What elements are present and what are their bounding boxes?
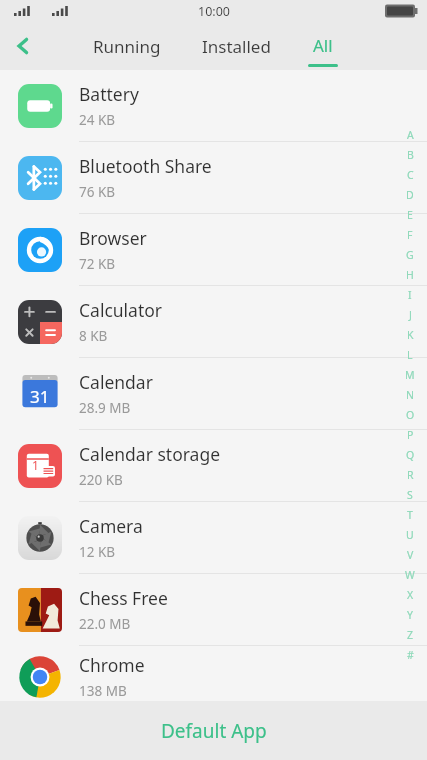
staticText: 76 KB [79, 183, 116, 201]
staticText: Chess Free [79, 586, 168, 610]
staticText: Q [406, 448, 415, 462]
staticText: W [405, 568, 415, 582]
staticText: Calendar [79, 370, 153, 394]
staticText: D [406, 188, 414, 202]
staticText: U [406, 528, 414, 542]
button[interactable]: U [402, 525, 418, 545]
button[interactable]: E [402, 205, 418, 225]
button[interactable]: C [402, 165, 418, 185]
staticText: Y [407, 608, 413, 622]
staticText: J [409, 308, 412, 322]
staticText: 24 KB [79, 111, 116, 129]
button[interactable]: K [402, 325, 418, 345]
staticText: L [407, 348, 413, 362]
staticText: R [407, 468, 414, 482]
staticText: E [407, 208, 413, 222]
button[interactable]: I [402, 285, 418, 305]
button[interactable]: G [402, 245, 418, 265]
button[interactable]: M [402, 365, 418, 385]
button[interactable]: Browser [0, 214, 427, 286]
staticText: 138 MB [79, 682, 127, 700]
staticText: Browser [79, 226, 147, 250]
staticText: F [407, 228, 413, 242]
staticText: 22.0 MB [79, 615, 131, 633]
staticText: N [406, 388, 414, 402]
staticText: M [405, 368, 415, 382]
staticText: 8 KB [79, 327, 108, 345]
button[interactable]: Calculator [0, 286, 427, 358]
button[interactable]: Installed [186, 22, 286, 70]
staticText: Battery [79, 82, 139, 106]
button[interactable]: 1 [0, 430, 427, 502]
button[interactable]: Q [402, 445, 418, 465]
button[interactable]: 31 [0, 358, 427, 430]
button[interactable]: A [402, 125, 418, 145]
staticText: 31 [30, 385, 50, 408]
button[interactable]: All [293, 22, 353, 70]
staticText: H [406, 268, 414, 282]
staticText: 10:00 [198, 3, 230, 20]
staticText: P [407, 428, 414, 442]
button[interactable]: N [402, 385, 418, 405]
staticText: 1 [32, 457, 39, 473]
button[interactable]: L [402, 345, 418, 365]
button[interactable]: D [402, 185, 418, 205]
staticText: S [407, 488, 413, 502]
staticText: K [407, 328, 414, 342]
button[interactable]: Bluetooth Share [0, 142, 427, 214]
staticText: O [406, 408, 415, 422]
button[interactable]: Battery [0, 70, 427, 142]
staticText: Z [407, 628, 414, 642]
button[interactable]: H [402, 265, 418, 285]
staticText: Installed [202, 35, 271, 58]
staticText: Running [93, 35, 161, 58]
button[interactable]: B [402, 145, 418, 165]
staticText: X [407, 588, 414, 602]
staticText: 220 KB [79, 471, 123, 489]
button[interactable]: R [402, 465, 418, 485]
button[interactable]: S [402, 485, 418, 505]
button[interactable]: X [402, 585, 418, 605]
staticText: 12 KB [79, 543, 116, 561]
button[interactable]: P [402, 425, 418, 445]
staticText: C [407, 168, 414, 182]
button[interactable]: F [402, 225, 418, 245]
staticText: # [407, 648, 414, 662]
staticText: V [407, 548, 414, 562]
button[interactable]: Running [78, 22, 176, 70]
button[interactable]: Chess Free [0, 574, 427, 646]
staticText: B [407, 148, 414, 162]
staticText: Default App [161, 718, 267, 744]
staticText: A [407, 128, 414, 142]
button[interactable]: Camera [0, 502, 427, 574]
button[interactable]: # [402, 645, 418, 665]
button[interactable]: Y [402, 605, 418, 625]
button[interactable]: Back [0, 22, 46, 70]
staticText: Bluetooth Share [79, 154, 212, 178]
staticText: 72 KB [79, 255, 116, 273]
button[interactable]: O [402, 405, 418, 425]
button[interactable]: Default App [0, 701, 427, 760]
button[interactable]: Chrome [0, 646, 427, 707]
staticText: Camera [79, 514, 143, 538]
staticText: Calculator [79, 298, 163, 322]
staticText: I [408, 288, 412, 302]
button[interactable]: Z [402, 625, 418, 645]
button[interactable]: W [402, 565, 418, 585]
button[interactable]: V [402, 545, 418, 565]
staticText: G [406, 248, 414, 262]
button[interactable]: T [402, 505, 418, 525]
staticText: T [407, 508, 413, 522]
staticText: Chrome [79, 653, 145, 677]
staticText: 28.9 MB [79, 399, 131, 417]
button[interactable]: J [402, 305, 418, 325]
staticText: Calendar storage [79, 442, 221, 466]
staticText: All [313, 34, 333, 57]
